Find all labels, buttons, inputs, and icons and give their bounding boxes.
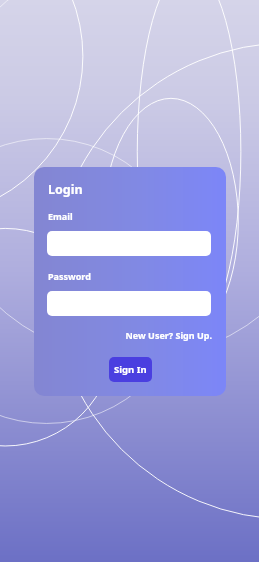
- staticText: New User? Sign Up.: [125, 329, 212, 341]
- button[interactable]: Sign In: [109, 357, 152, 382]
- staticText: Sign In: [114, 363, 147, 376]
- staticText: Password: [48, 270, 91, 282]
- button[interactable]: Email input field: [47, 231, 211, 256]
- staticText: Email: [48, 210, 73, 222]
- button[interactable]: Password input field: [47, 291, 211, 316]
- staticText: Login: [48, 181, 83, 198]
- button[interactable]: New User? Sign Up.: [114, 327, 212, 342]
